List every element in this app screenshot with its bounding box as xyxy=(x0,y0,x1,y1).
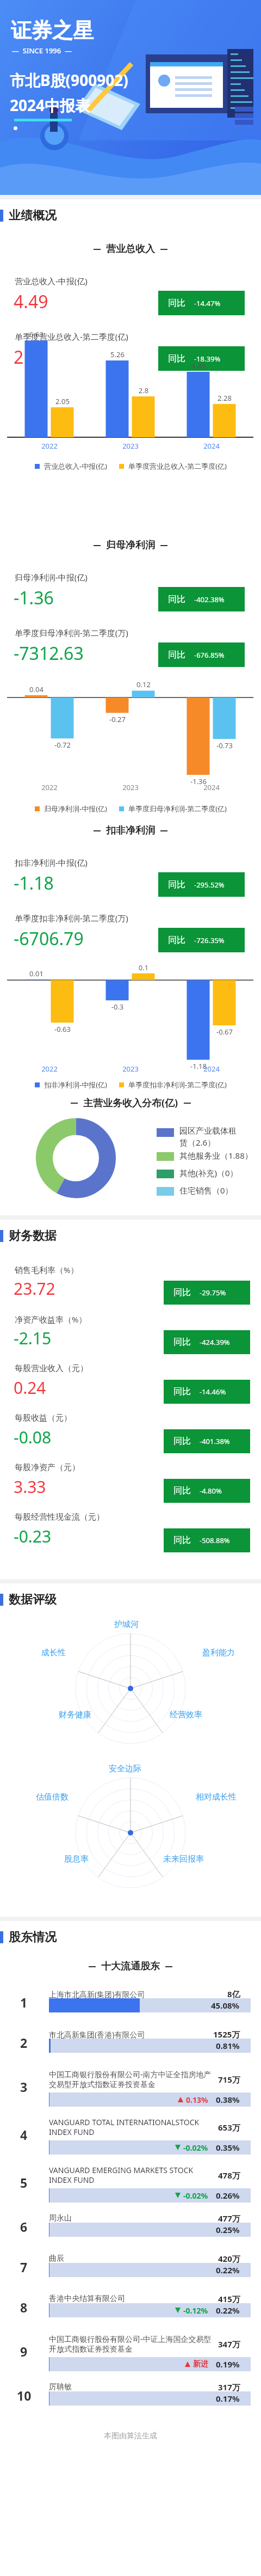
staticText: 4 xyxy=(20,2126,28,2143)
staticText: 住宅销售（0） xyxy=(179,1185,233,1196)
staticText: 同比 xyxy=(168,879,185,890)
staticText: 本图由算法生成 xyxy=(104,2431,157,2441)
staticText: 相对成长性 xyxy=(196,1792,237,1802)
staticText: 营业总收入-中报(亿) xyxy=(15,276,88,286)
staticText: 2.8 xyxy=(127,386,160,395)
staticText: 每股收益（元） xyxy=(15,1413,72,1423)
staticText: 盈利能力 xyxy=(202,1648,235,1658)
staticText: -29.75% xyxy=(200,1288,226,1298)
staticText: 2022 xyxy=(28,782,71,792)
button[interactable]: 4 xyxy=(0,2115,261,2163)
staticText: -1.36 xyxy=(14,586,54,610)
staticText: 2023 xyxy=(109,782,152,792)
staticText: 扣非净利润-中报(亿) xyxy=(44,1080,107,1090)
staticText: 347万 xyxy=(218,2339,240,2349)
button[interactable]: 同比 xyxy=(158,587,245,611)
staticText: 市北高新集团(香港)有限公司 xyxy=(49,2029,145,2040)
staticText: -0.3 xyxy=(101,1002,134,1012)
button[interactable]: 同比 xyxy=(164,1281,250,1305)
button[interactable]: 同比 xyxy=(164,1429,250,1453)
staticText: 归母净利润 xyxy=(106,539,155,552)
staticText: 2024 xyxy=(190,441,233,451)
staticText: 45.08% xyxy=(211,2000,240,2011)
staticText: 3.33 xyxy=(14,1476,46,1498)
button[interactable]: 8 xyxy=(0,2292,261,2332)
staticText: 财务数据 xyxy=(9,1228,57,1244)
staticText: 安全边际 xyxy=(109,1764,141,1774)
staticText: 3 xyxy=(20,2078,28,2095)
staticText: 4.49 xyxy=(182,361,215,371)
staticText: -676.85% xyxy=(194,650,225,660)
staticText: 销售毛利率（%） xyxy=(15,1264,79,1275)
staticText: 653万 xyxy=(218,2122,240,2133)
staticText: 同比 xyxy=(168,650,185,660)
staticText: 2022 xyxy=(28,441,71,451)
staticText: 1525万 xyxy=(213,2029,240,2040)
staticText: -7312.63 xyxy=(14,641,84,665)
staticText: 2.28 xyxy=(14,345,48,369)
staticText: 新进 xyxy=(193,2359,208,2369)
staticText: 数据评级 xyxy=(9,1592,57,1607)
staticText: 单季度扣非净利润-第二季度(亿) xyxy=(128,1080,227,1090)
button[interactable]: 9 xyxy=(0,2332,261,2380)
staticText: 478万 xyxy=(218,2170,240,2181)
staticText: 股息率 xyxy=(64,1854,89,1864)
staticText: 5.26 xyxy=(101,350,134,359)
button[interactable]: 6 xyxy=(0,2211,261,2251)
staticText: 7 xyxy=(20,2259,28,2275)
staticText: 成长性 xyxy=(41,1648,66,1658)
staticText: 营业总收入-中报(亿) xyxy=(44,461,107,471)
button[interactable]: 同比 xyxy=(164,1528,250,1552)
button[interactable]: 2 xyxy=(0,2027,261,2067)
staticText: 2.05 xyxy=(46,396,79,406)
staticText: 2.28 xyxy=(208,393,241,403)
staticText: 0.35% xyxy=(216,2142,240,2153)
staticText: 6 xyxy=(20,2218,28,2235)
staticText: 同比 xyxy=(173,1386,191,1397)
staticText: 单季度营业总收入-第二季度(亿) xyxy=(128,461,227,471)
button[interactable]: 7 xyxy=(0,2251,261,2292)
staticText: 0.04 xyxy=(20,684,53,694)
button[interactable]: 1 xyxy=(0,1987,261,2027)
staticText: 厉聃敏 xyxy=(49,2382,72,2392)
staticText: -295.52% xyxy=(194,880,225,890)
button[interactable]: 同比 xyxy=(158,643,245,667)
staticText: 1 xyxy=(20,1994,28,2011)
staticText: -0.02% xyxy=(183,2190,208,2201)
staticText: 2023 xyxy=(109,1064,152,1074)
button[interactable]: 同比 xyxy=(158,291,245,315)
button[interactable]: 同比 xyxy=(158,872,245,897)
staticText: 市北B股(900902) xyxy=(10,70,128,90)
staticText: -0.73 xyxy=(208,741,241,750)
staticText: VANGUARD TOTAL INTERNATIONALSTOCK INDEX … xyxy=(49,2117,212,2137)
staticText: 其他服务业（1.88） xyxy=(179,1150,253,1161)
staticText: 477万 xyxy=(218,2213,240,2224)
button[interactable]: 10 xyxy=(0,2380,261,2420)
staticText: 0.13% xyxy=(186,2095,208,2105)
staticText: -0.08 xyxy=(14,1426,52,1448)
staticText: 0.19% xyxy=(216,2359,240,2370)
staticText: 6.63 xyxy=(20,329,53,339)
staticText: 2024 xyxy=(190,782,233,792)
button[interactable]: 同比 xyxy=(158,928,245,952)
button[interactable]: 同比 xyxy=(164,1380,250,1404)
staticText: 同比 xyxy=(168,298,185,309)
button[interactable]: 同比 xyxy=(164,1479,250,1503)
staticText: 单季度归母净利润-第二季度(万) xyxy=(15,627,128,638)
staticText: 0.38% xyxy=(216,2094,240,2105)
button[interactable]: 5 xyxy=(0,2163,261,2211)
staticText: 同比 xyxy=(173,1337,191,1348)
staticText: 0.01 xyxy=(20,969,53,978)
button[interactable]: 同比 xyxy=(164,1330,250,1354)
button[interactable]: 3 xyxy=(0,2067,261,2115)
staticText: 未来回报率 xyxy=(163,1854,204,1864)
button[interactable]: 同比 xyxy=(158,346,245,371)
staticText: VANGUARD EMERGING MARKETS STOCK INDEX FU… xyxy=(49,2165,212,2185)
staticText: 0.22% xyxy=(216,2305,240,2316)
staticText: 归母净利润-中报(亿) xyxy=(15,572,88,583)
staticText: 2022 xyxy=(28,1064,71,1074)
staticText: 同比 xyxy=(168,935,185,946)
staticText: 主营业务收入分布(亿) xyxy=(83,1096,178,1110)
staticText: 营业总收入 xyxy=(106,243,155,255)
staticText: 0.26% xyxy=(216,2190,240,2201)
